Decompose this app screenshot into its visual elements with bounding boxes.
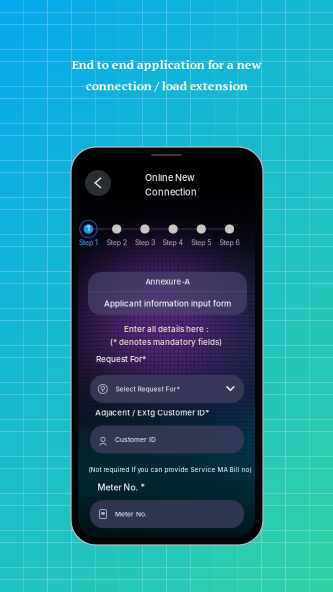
button[interactable]: Meter No. xyxy=(90,500,244,528)
staticText: Request For* xyxy=(96,354,146,364)
staticText: Step 2 xyxy=(107,238,127,247)
staticText: Adjacent / Extg Customer ID* xyxy=(95,408,209,417)
staticText: Step 5 xyxy=(191,238,211,247)
staticText: Step 4 xyxy=(163,238,184,247)
staticText: 1 xyxy=(87,224,90,233)
staticText: Step 6 xyxy=(219,238,239,247)
staticText: connection / load extension xyxy=(85,77,247,94)
staticText: Step 3 xyxy=(135,238,155,247)
staticText: Enter all details here : xyxy=(124,324,208,334)
staticText: Annexure-A xyxy=(145,277,189,286)
staticText: (Not required If you can provide Service… xyxy=(88,466,251,474)
staticText: (* denotes mandatory fields) xyxy=(110,337,222,347)
staticText: End to end application for a new xyxy=(71,56,261,72)
button[interactable]: Customer ID xyxy=(90,425,244,453)
staticText: Online New xyxy=(145,172,195,183)
staticText: Connection xyxy=(145,186,197,198)
staticText: Step 1 xyxy=(79,238,98,247)
staticText: Select Request For* xyxy=(116,385,180,393)
staticText: Meter No. * xyxy=(98,482,146,492)
staticText: Applicant information input form xyxy=(104,299,231,308)
button[interactable]: Select Request For* xyxy=(90,375,244,403)
button[interactable]: Back xyxy=(85,170,111,196)
staticText: Meter No. xyxy=(115,510,147,518)
staticText: Customer ID xyxy=(115,435,156,444)
